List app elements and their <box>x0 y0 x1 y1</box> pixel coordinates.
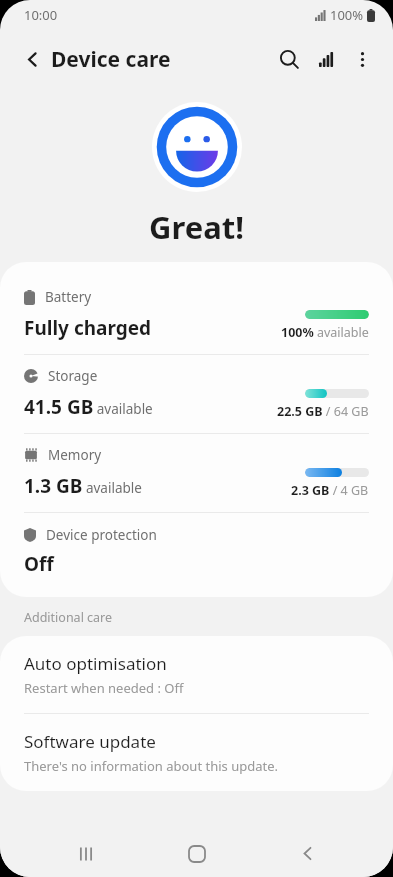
button[interactable]: Usage statistics <box>309 42 343 76</box>
button[interactable]: Storage <box>0 355 393 433</box>
button[interactable]: Home <box>173 830 221 877</box>
staticText: Great! <box>149 206 244 248</box>
staticText: Restart when needed : Off <box>24 679 184 697</box>
button[interactable]: Software update <box>0 714 393 791</box>
staticText: Device care <box>51 45 171 74</box>
button[interactable]: Memory <box>0 434 393 512</box>
staticText: 1.3 GB available <box>24 473 142 499</box>
staticText: 10:00 <box>24 6 58 24</box>
staticText: 100% <box>330 6 364 24</box>
button[interactable]: More options <box>343 40 381 78</box>
staticText: Additional care <box>24 609 113 626</box>
staticText: Auto optimisation <box>24 652 167 675</box>
button[interactable]: Battery <box>0 276 393 354</box>
button[interactable]: Recent apps <box>62 830 110 877</box>
staticText: 100% available <box>281 324 369 341</box>
staticText: 22.5 GB / 64 GB <box>277 403 369 420</box>
button[interactable]: Search <box>269 39 309 79</box>
staticText: Storage <box>48 367 98 385</box>
staticText: 2.3 GB / 4 GB <box>291 482 369 499</box>
staticText: Memory <box>48 446 102 464</box>
staticText: There's no information about this update… <box>24 757 278 775</box>
staticText: Battery <box>45 288 92 306</box>
staticText: 41.5 GB available <box>24 394 153 420</box>
button[interactable]: Back <box>14 41 50 77</box>
staticText: Off <box>24 551 54 577</box>
button[interactable]: Device protection <box>0 513 393 597</box>
button[interactable]: Auto optimisation <box>0 636 393 713</box>
button[interactable]: Back <box>283 830 331 877</box>
staticText: Fully charged <box>24 315 152 341</box>
staticText: Device protection <box>46 526 157 544</box>
staticText: Software update <box>24 730 156 753</box>
